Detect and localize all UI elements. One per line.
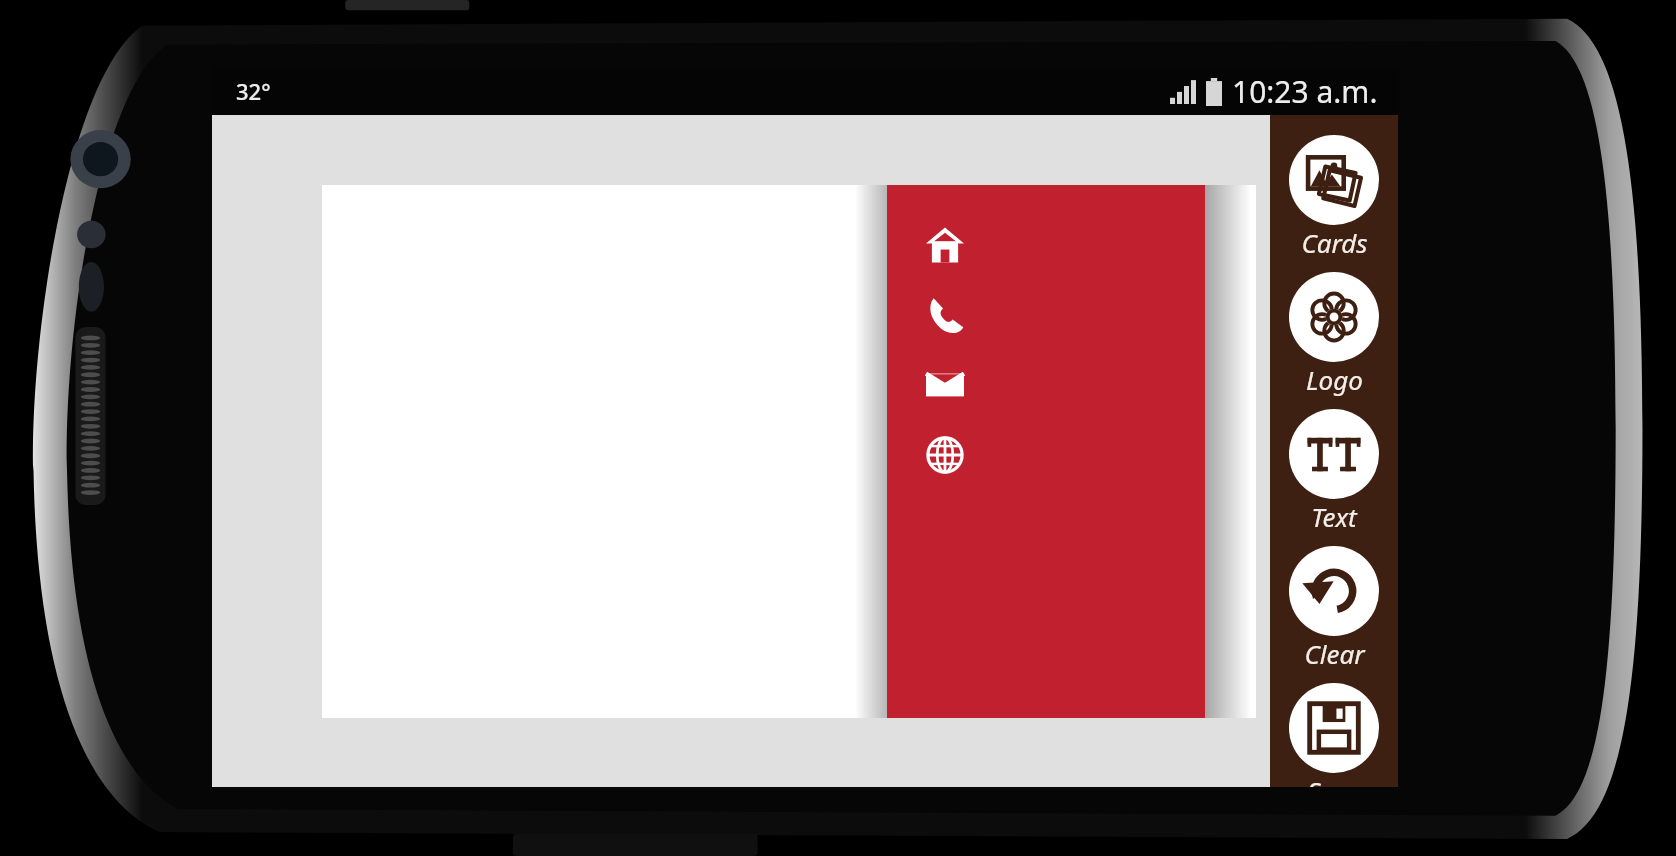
button[interactable]: Cards xyxy=(1270,135,1398,260)
staticText: Clear xyxy=(1304,636,1365,671)
staticText: 32° xyxy=(236,76,271,106)
button[interactable]: Clear xyxy=(1270,546,1398,671)
button[interactable]: Website xyxy=(921,431,969,479)
button[interactable]: Home xyxy=(921,221,969,269)
staticText: Cards xyxy=(1301,225,1368,260)
button[interactable]: Text xyxy=(1270,409,1398,534)
staticText: Save xyxy=(1307,773,1361,787)
button[interactable]: Save xyxy=(1270,683,1398,787)
staticText: Text xyxy=(1311,499,1357,534)
button[interactable]: Email xyxy=(921,361,969,409)
button[interactable]: Phone xyxy=(921,291,969,339)
button[interactable]: Logo xyxy=(1270,272,1398,397)
button[interactable]: Home xyxy=(887,185,1205,718)
staticText: 10:23 a.m. xyxy=(1232,71,1378,112)
staticText: Logo xyxy=(1306,362,1363,397)
